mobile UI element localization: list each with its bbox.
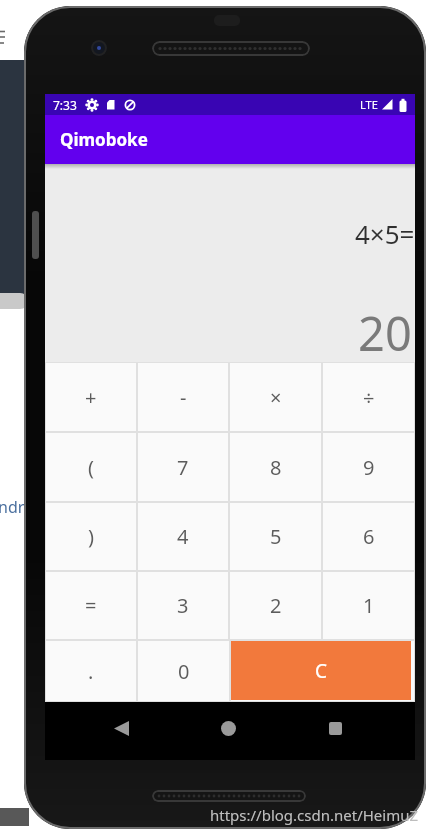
button[interactable]: =	[45, 571, 137, 640]
staticText: 6	[363, 523, 375, 550]
staticText: =	[85, 592, 97, 619]
button[interactable]: 5	[229, 502, 322, 571]
button[interactable]: .	[45, 640, 137, 702]
button[interactable]: 6	[322, 502, 415, 571]
staticText: ÷	[363, 384, 375, 411]
button[interactable]: 4	[137, 502, 229, 571]
staticText: 7:33	[53, 97, 77, 113]
button[interactable]: +	[45, 362, 137, 432]
button[interactable]: )	[45, 502, 137, 571]
button[interactable]: ×	[229, 362, 322, 432]
button[interactable]: 1	[322, 571, 415, 640]
button[interactable]: 7	[137, 432, 229, 502]
button[interactable]: 0	[137, 640, 230, 702]
staticText: 2	[270, 592, 282, 619]
button[interactable]: C	[231, 641, 411, 700]
staticText: https://blog.csdn.net/HeimuZ	[210, 805, 419, 825]
staticText: 7	[177, 454, 189, 481]
staticText: C	[315, 658, 328, 684]
staticText: ndro	[0, 496, 34, 518]
button[interactable]	[114, 721, 129, 736]
button[interactable]: 3	[137, 571, 229, 640]
button[interactable]	[221, 721, 236, 736]
staticText: 4	[177, 523, 189, 550]
staticText: 0	[178, 658, 190, 685]
button[interactable]: 2	[229, 571, 322, 640]
staticText: 20	[358, 301, 412, 365]
staticText: .	[88, 658, 94, 685]
button[interactable]: (	[45, 432, 137, 502]
staticText: 9	[363, 454, 375, 481]
staticText: Qimoboke	[60, 128, 148, 151]
button[interactable]	[329, 722, 342, 735]
staticText: (	[88, 454, 94, 481]
staticText: 3	[177, 592, 189, 619]
staticText: -	[180, 384, 187, 411]
staticText: 1	[363, 592, 375, 619]
staticText: +	[85, 384, 97, 411]
staticText: )	[88, 523, 94, 550]
button[interactable]: 8	[229, 432, 322, 502]
button[interactable]: -	[137, 362, 229, 432]
button[interactable]: 9	[322, 432, 415, 502]
staticText: LTE	[360, 97, 378, 112]
staticText: 5	[270, 523, 282, 550]
button[interactable]: ÷	[322, 362, 415, 432]
staticText: ×	[270, 384, 282, 411]
staticText: 4×5=	[355, 216, 415, 251]
staticText: 8	[270, 454, 282, 481]
